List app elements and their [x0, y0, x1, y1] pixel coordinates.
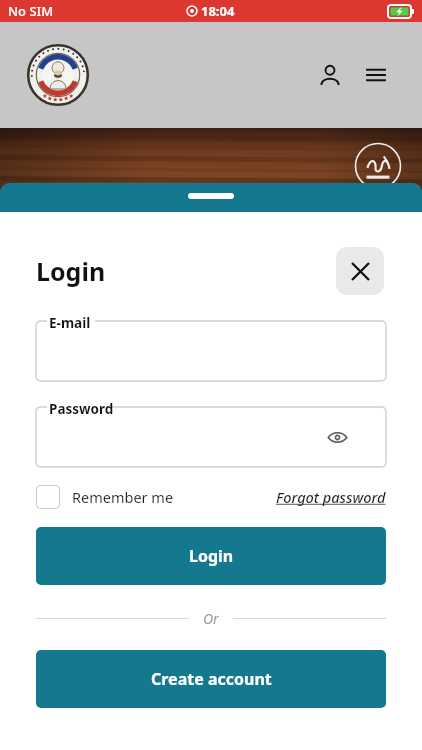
staticText: Password — [49, 400, 114, 418]
button[interactable]: Close — [336, 247, 384, 295]
button[interactable]: Show password — [322, 422, 352, 452]
staticText: Forgot password — [276, 487, 386, 507]
staticText: Remember me — [72, 487, 174, 507]
staticText: Create account — [151, 668, 272, 690]
staticText: Login — [189, 545, 234, 567]
staticText: E-mail — [49, 314, 91, 332]
staticText: Login — [36, 254, 106, 288]
button[interactable]: Remember me — [36, 485, 174, 509]
button[interactable]: Account — [310, 55, 350, 95]
button[interactable]: Login — [36, 527, 386, 585]
button[interactable]: Create account — [36, 650, 386, 708]
button[interactable]: Menu — [356, 55, 396, 95]
staticText: No SIM — [8, 2, 54, 20]
staticText: Or — [203, 609, 219, 628]
button[interactable]: Forgot password — [276, 487, 386, 507]
staticText: 18:04 — [201, 2, 235, 20]
button[interactable]: Kennington Grill home — [27, 44, 89, 106]
